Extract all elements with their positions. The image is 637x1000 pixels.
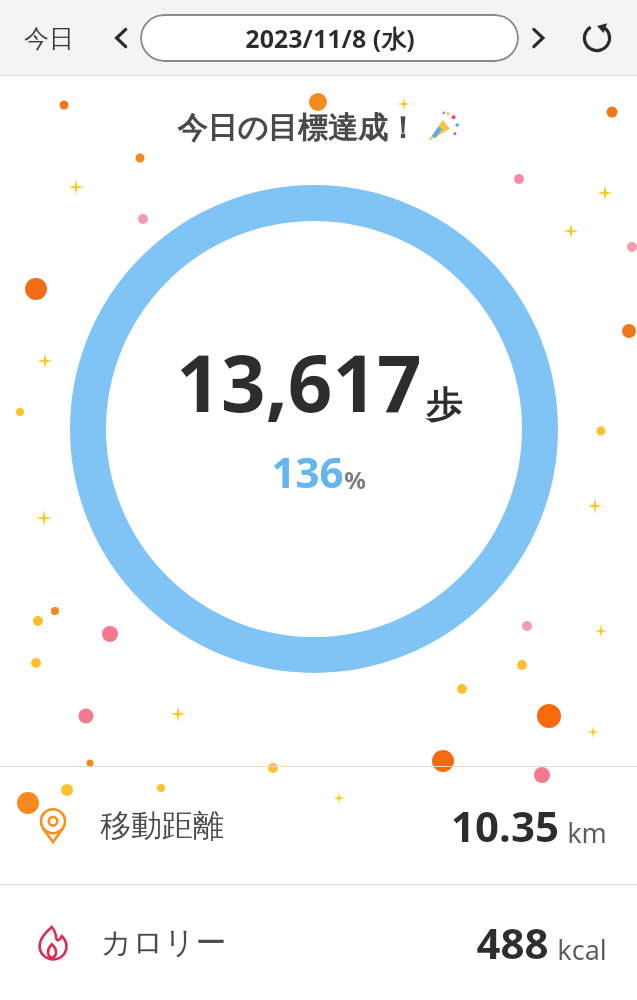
staticText: 今日の目標達成！ — [177, 109, 418, 147]
staticText: 10.35 — [451, 797, 559, 854]
staticText: 2023/11/8 (水) — [245, 21, 415, 55]
staticText: 今日 — [24, 23, 74, 54]
staticText: 移動距離 — [100, 806, 224, 845]
staticText: 13,617 — [176, 329, 422, 435]
staticText: % — [344, 463, 366, 496]
staticText: 136 — [271, 443, 344, 500]
staticText: 488 — [476, 914, 549, 971]
button[interactable]: 移動距離 — [0, 767, 637, 884]
staticText: kcal — [557, 931, 607, 968]
staticText: 歩 — [426, 382, 462, 427]
button[interactable]: 2023/11/8 (水) — [140, 14, 519, 62]
button[interactable]: Previous day — [102, 19, 140, 57]
button[interactable]: 今日 — [18, 17, 80, 60]
staticText: カロリー — [100, 923, 227, 962]
button[interactable]: Next day — [519, 19, 557, 57]
staticText: km — [567, 814, 607, 851]
button[interactable]: Refresh — [575, 16, 619, 60]
button[interactable]: カロリー — [0, 885, 637, 1000]
